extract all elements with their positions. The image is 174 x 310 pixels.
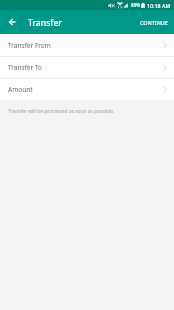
staticText: Transfer To	[8, 63, 42, 72]
staticText: Transfer	[28, 17, 62, 29]
staticText: 10:18 AM	[147, 2, 171, 9]
staticText: 89%	[131, 2, 141, 8]
staticText: Transfer will be processed as soon as po…	[8, 108, 115, 115]
staticText: Amount	[8, 85, 33, 94]
staticText: CONTINUE	[140, 19, 168, 26]
staticText: Transfer From	[8, 41, 51, 50]
button[interactable]: CONTINUE	[134, 14, 174, 31]
button[interactable]: Transfer From	[0, 34, 174, 56]
button[interactable]: Back	[0, 10, 24, 34]
button[interactable]: Amount	[0, 79, 174, 100]
button[interactable]: Transfer To	[0, 57, 174, 78]
